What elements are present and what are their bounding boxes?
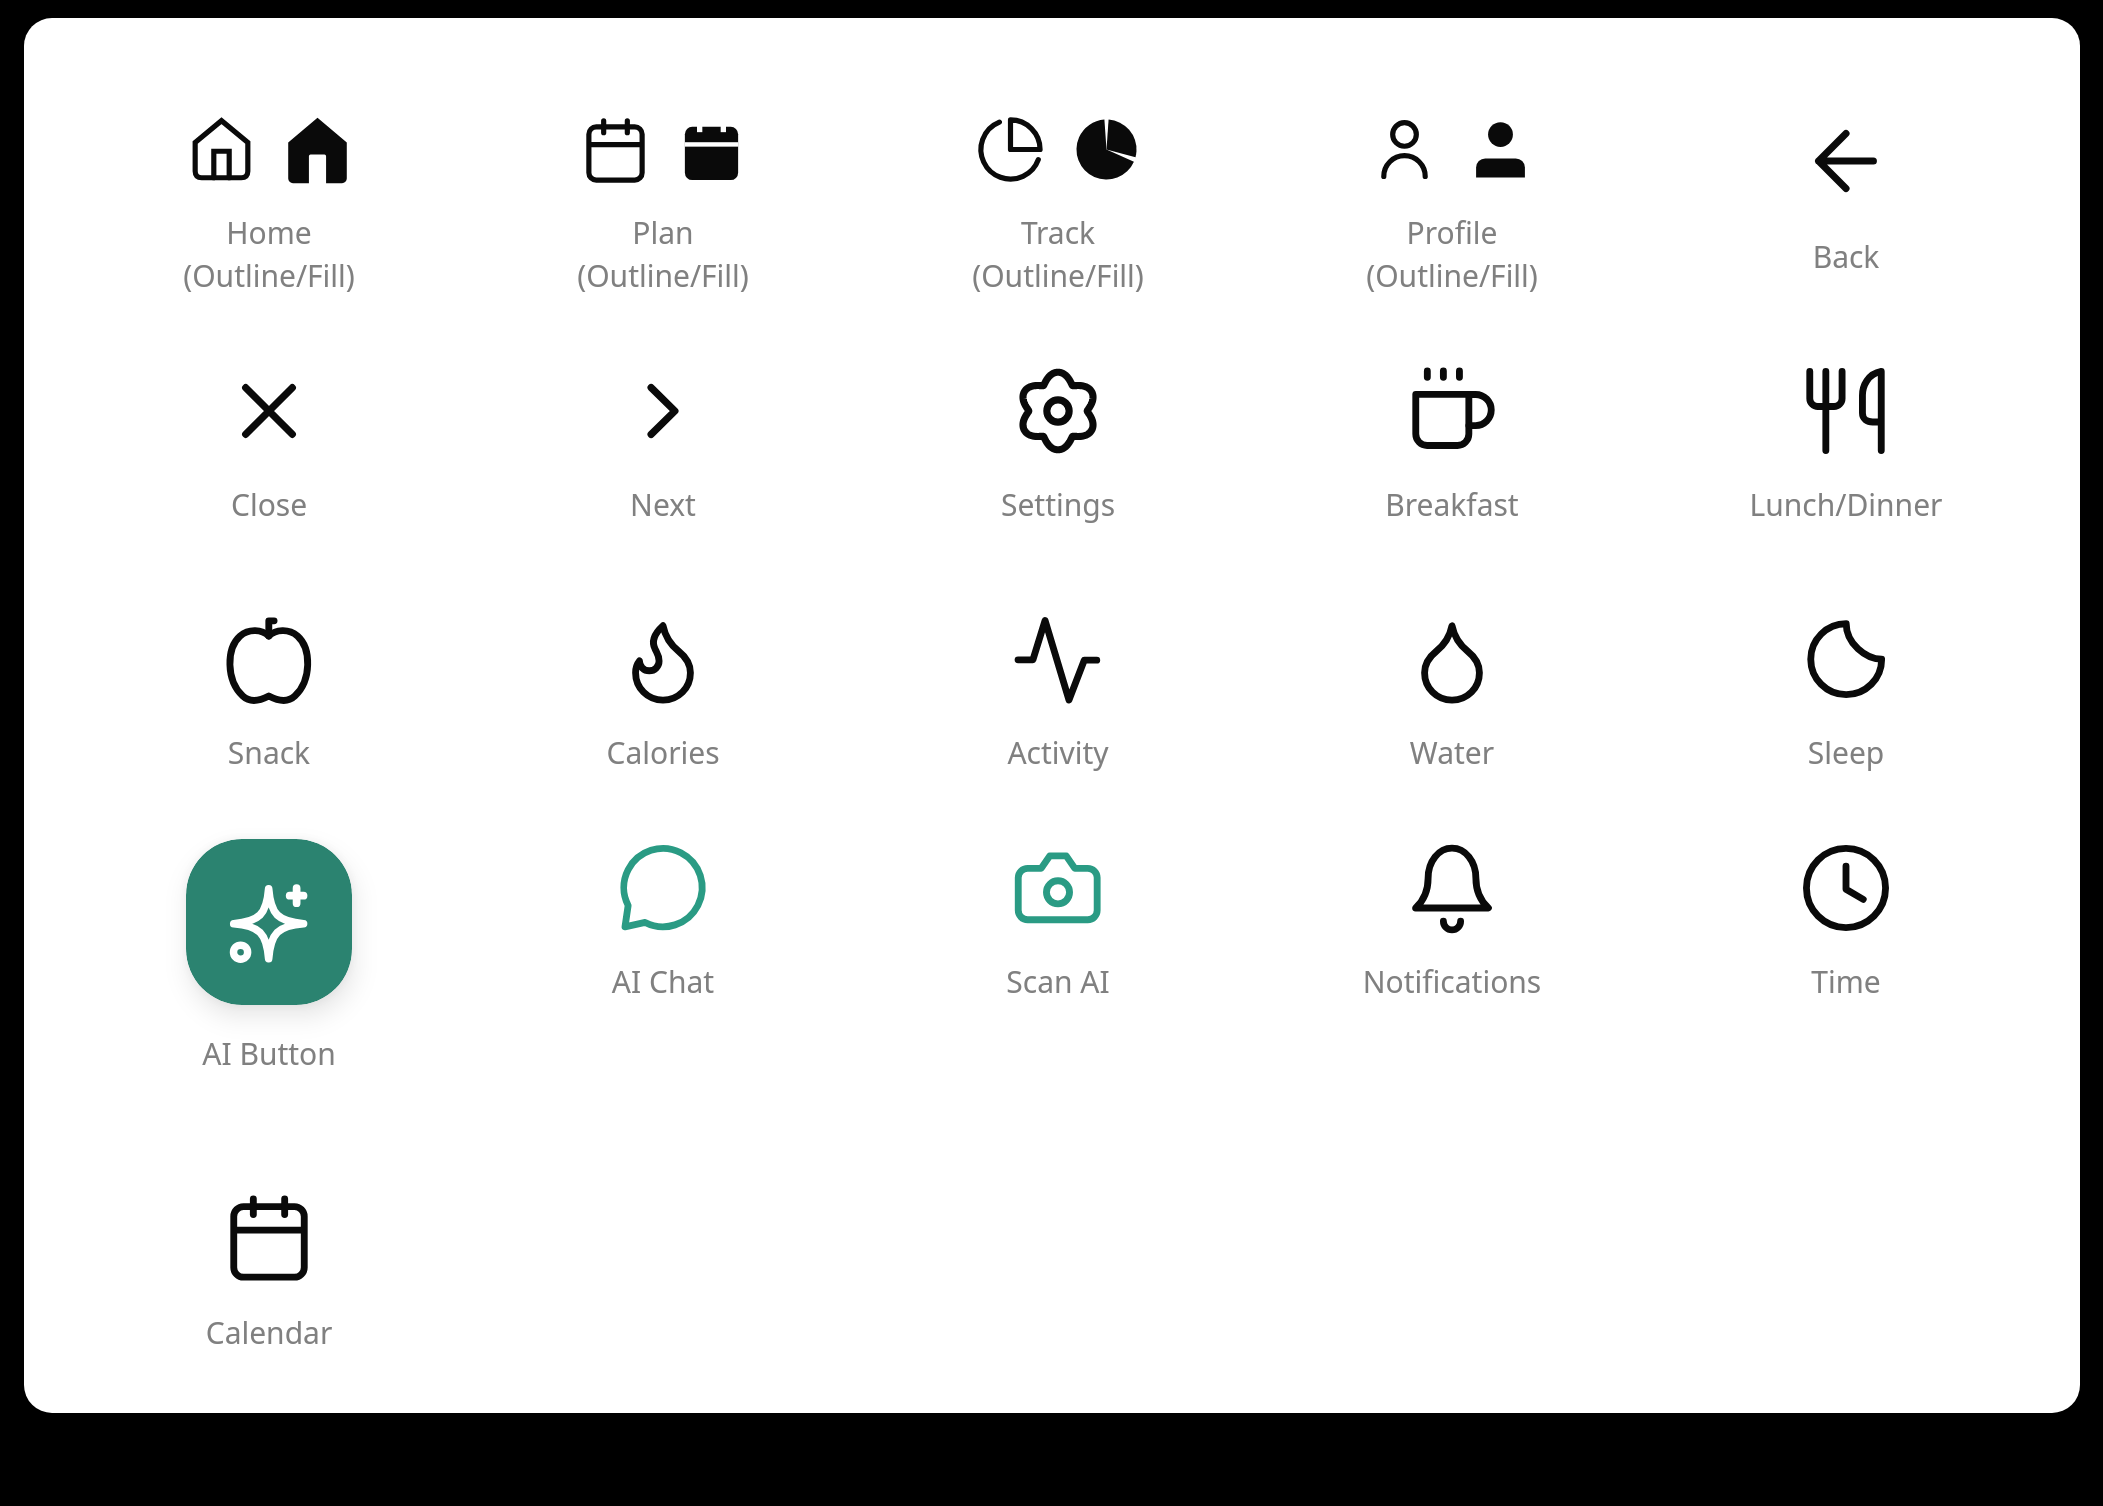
button[interactable]: Close [109,344,429,553]
button[interactable]: Home (Outline/Fill) [109,94,429,326]
button[interactable]: Activity [898,593,1218,801]
staticText: Scan AI [898,961,1218,1002]
staticText: Home (Outline/Fill) [109,212,429,296]
staticText: Water [1292,732,1612,773]
staticText: Settings [898,484,1218,525]
staticText: Time [1686,961,2006,1002]
button[interactable]: AI assistant [109,839,429,1019]
button[interactable]: Calendar [109,1171,429,1381]
button[interactable]: AI Chat [503,821,823,1030]
button[interactable]: Water [1292,594,1612,801]
staticText: Calories [503,732,823,773]
staticText: AI Chat [503,961,823,1002]
staticText: Profile (Outline/Fill) [1292,212,1612,296]
staticText: Notifications [1292,961,1612,1002]
button[interactable]: Sleep [1686,592,2006,801]
staticText: Lunch/Dinner [1686,484,2006,525]
button[interactable]: Next [503,344,823,553]
staticText: Calendar [109,1312,429,1353]
button[interactable]: Breakfast [1292,344,1612,553]
staticText: Activity [898,732,1218,773]
staticText: Breakfast [1292,484,1612,525]
button[interactable]: Plan (Outline/Fill) [503,95,823,326]
button[interactable]: Settings [898,344,1218,553]
staticText: Snack [109,732,429,773]
button[interactable]: Snack [109,593,429,801]
button[interactable]: Profile (Outline/Fill) [1292,94,1612,326]
button[interactable]: Calories [503,594,823,801]
staticText: Back [1686,236,2006,277]
staticText: Track (Outline/Fill) [898,212,1218,296]
staticText: Close [109,484,429,525]
button[interactable]: Track (Outline/Fill) [898,94,1218,326]
staticText: Next [503,484,823,525]
staticText: Plan (Outline/Fill) [503,212,823,296]
button[interactable]: Scan AI [898,821,1218,1030]
button[interactable]: Notifications [1292,821,1612,1030]
staticText: AI Button [109,1033,429,1074]
button[interactable]: Back [1686,94,2006,305]
button[interactable]: Time [1686,821,2006,1030]
button[interactable]: Lunch and dinner [1686,344,2006,553]
staticText: Sleep [1686,732,2006,773]
